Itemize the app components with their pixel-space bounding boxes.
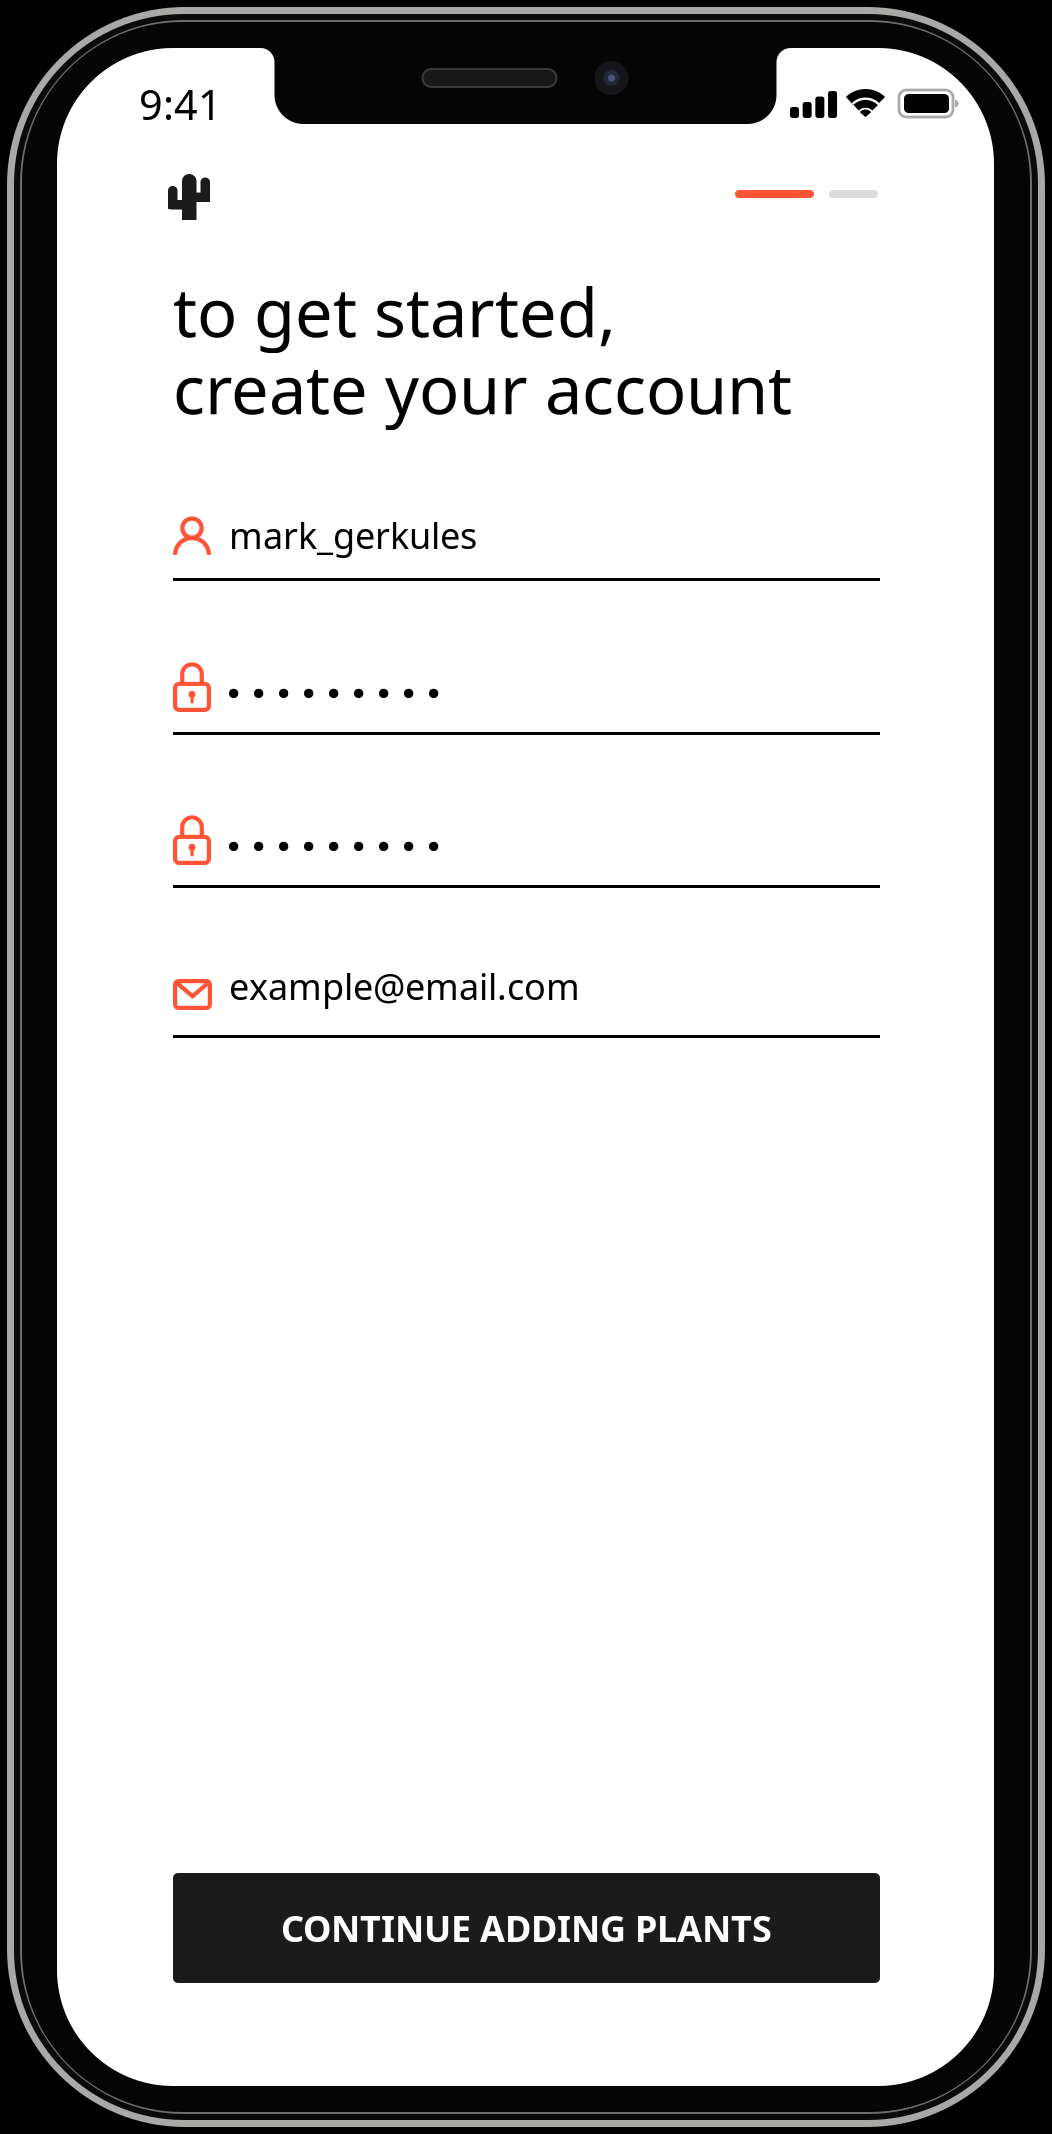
staticText: 9:41: [139, 77, 222, 131]
button[interactable]: Cactus home: [154, 162, 224, 232]
button[interactable]: Password: [173, 664, 880, 735]
staticText: mark_gerkules: [229, 511, 477, 559]
staticText: CONTINUE ADDING PLANTS: [281, 1904, 772, 1952]
button[interactable]: Confirm password: [173, 817, 880, 888]
button[interactable]: CONTINUE ADDING PLANTS: [173, 1873, 880, 1983]
staticText: to get started,: [173, 267, 616, 355]
staticText: example@email.com: [229, 962, 580, 1010]
button[interactable]: Username: [173, 516, 880, 581]
staticText: create your account: [173, 344, 792, 432]
button[interactable]: Email: [173, 977, 880, 1038]
